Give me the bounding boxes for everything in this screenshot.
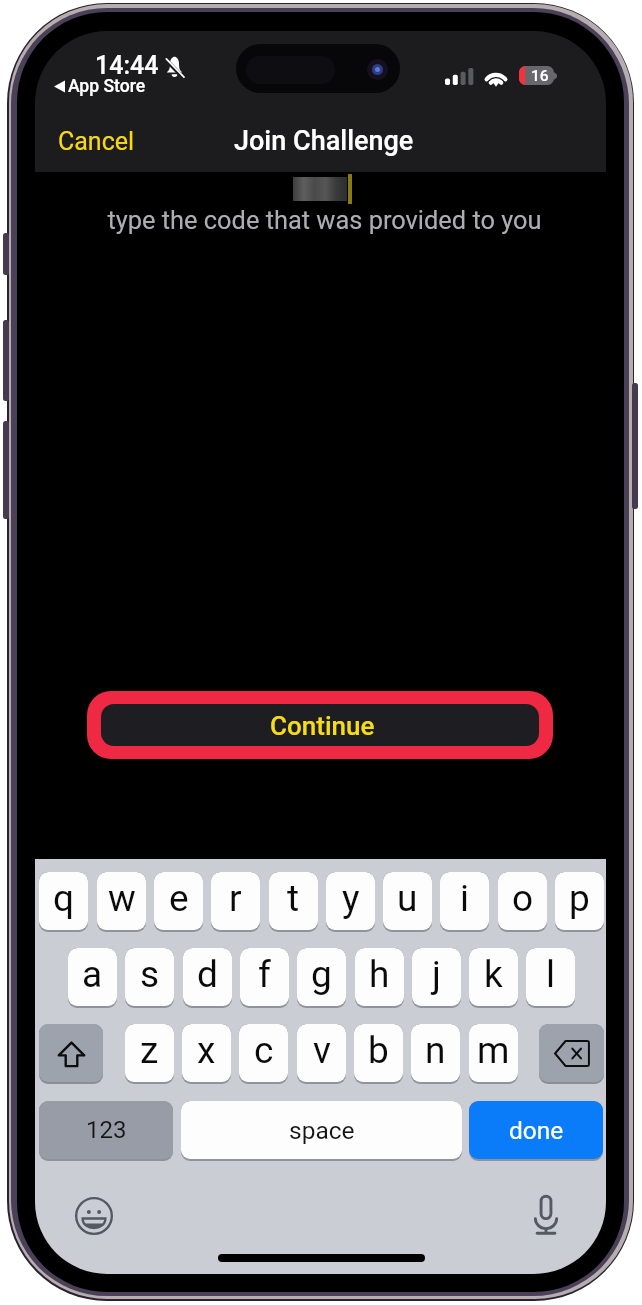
button[interactable]: o <box>498 872 547 930</box>
button[interactable]: b <box>354 1024 403 1082</box>
button[interactable]: l <box>526 948 575 1006</box>
button[interactable]: Dictation <box>531 1193 561 1237</box>
button[interactable]: p <box>555 872 604 930</box>
button[interactable]: u <box>383 872 432 930</box>
staticText: done <box>509 1116 564 1145</box>
button[interactable]: v <box>297 1024 346 1082</box>
staticText: f <box>258 953 271 996</box>
button[interactable]: f <box>240 948 289 1006</box>
staticText: 16 <box>531 67 549 85</box>
staticText: t <box>287 877 300 920</box>
button[interactable]: Continue <box>101 704 539 746</box>
staticText: k <box>484 953 503 996</box>
button[interactable]: m <box>469 1024 518 1082</box>
button[interactable]: t <box>269 872 318 930</box>
staticText: b <box>368 1029 389 1072</box>
staticText: z <box>140 1029 159 1072</box>
button[interactable]: q <box>39 872 88 930</box>
staticText: r <box>229 877 242 920</box>
button[interactable]: n <box>411 1024 460 1082</box>
staticText: App Store <box>68 76 146 97</box>
button[interactable]: 123 <box>39 1101 173 1159</box>
staticText: s <box>140 953 160 996</box>
staticText: type the code that was provided to you <box>39 205 606 235</box>
staticText: x <box>197 1029 216 1072</box>
staticText: Cancel <box>58 127 135 156</box>
staticText: i <box>460 877 469 920</box>
button[interactable]: done <box>469 1101 603 1159</box>
button[interactable]: h <box>355 948 404 1006</box>
staticText: o <box>512 877 534 920</box>
staticText: u <box>397 877 418 920</box>
button[interactable]: k <box>469 948 518 1006</box>
staticText: space <box>289 1116 355 1145</box>
button[interactable]: i <box>440 872 489 930</box>
staticText: 123 <box>86 1116 127 1144</box>
staticText: m <box>477 1029 510 1072</box>
button[interactable]: Cancel <box>40 117 153 166</box>
button[interactable]: g <box>297 948 346 1006</box>
staticText: p <box>569 877 590 920</box>
staticText: e <box>169 877 189 920</box>
staticText: Continue <box>270 711 375 741</box>
button[interactable]: Backspace <box>539 1024 604 1082</box>
staticText: v <box>313 1029 331 1072</box>
button[interactable]: z <box>125 1024 174 1082</box>
button[interactable]: w <box>97 872 146 930</box>
button[interactable]: space <box>181 1101 462 1159</box>
staticText: n <box>425 1029 446 1072</box>
staticText: c <box>254 1029 274 1072</box>
button[interactable]: Emoji keyboard <box>75 1197 115 1237</box>
button[interactable]: a <box>68 948 117 1006</box>
button[interactable]: Shift <box>39 1024 103 1082</box>
button[interactable]: d <box>183 948 232 1006</box>
staticText: l <box>546 953 555 996</box>
staticText: y <box>342 877 360 920</box>
button[interactable]: c <box>239 1024 288 1082</box>
staticText: 14:44 <box>95 51 159 80</box>
button[interactable]: y <box>326 872 375 930</box>
button[interactable]: r <box>211 872 260 930</box>
staticText: h <box>369 953 390 996</box>
staticText: Join Challenge <box>234 125 414 157</box>
staticText: d <box>197 953 218 996</box>
staticText: a <box>82 953 103 996</box>
staticText: w <box>108 877 136 920</box>
staticText: j <box>432 953 441 996</box>
staticText: g <box>311 953 332 996</box>
button[interactable]: x <box>182 1024 231 1082</box>
staticText: q <box>53 877 75 920</box>
button[interactable]: s <box>125 948 174 1006</box>
button[interactable]: j <box>412 948 461 1006</box>
button[interactable]: e <box>154 872 203 930</box>
